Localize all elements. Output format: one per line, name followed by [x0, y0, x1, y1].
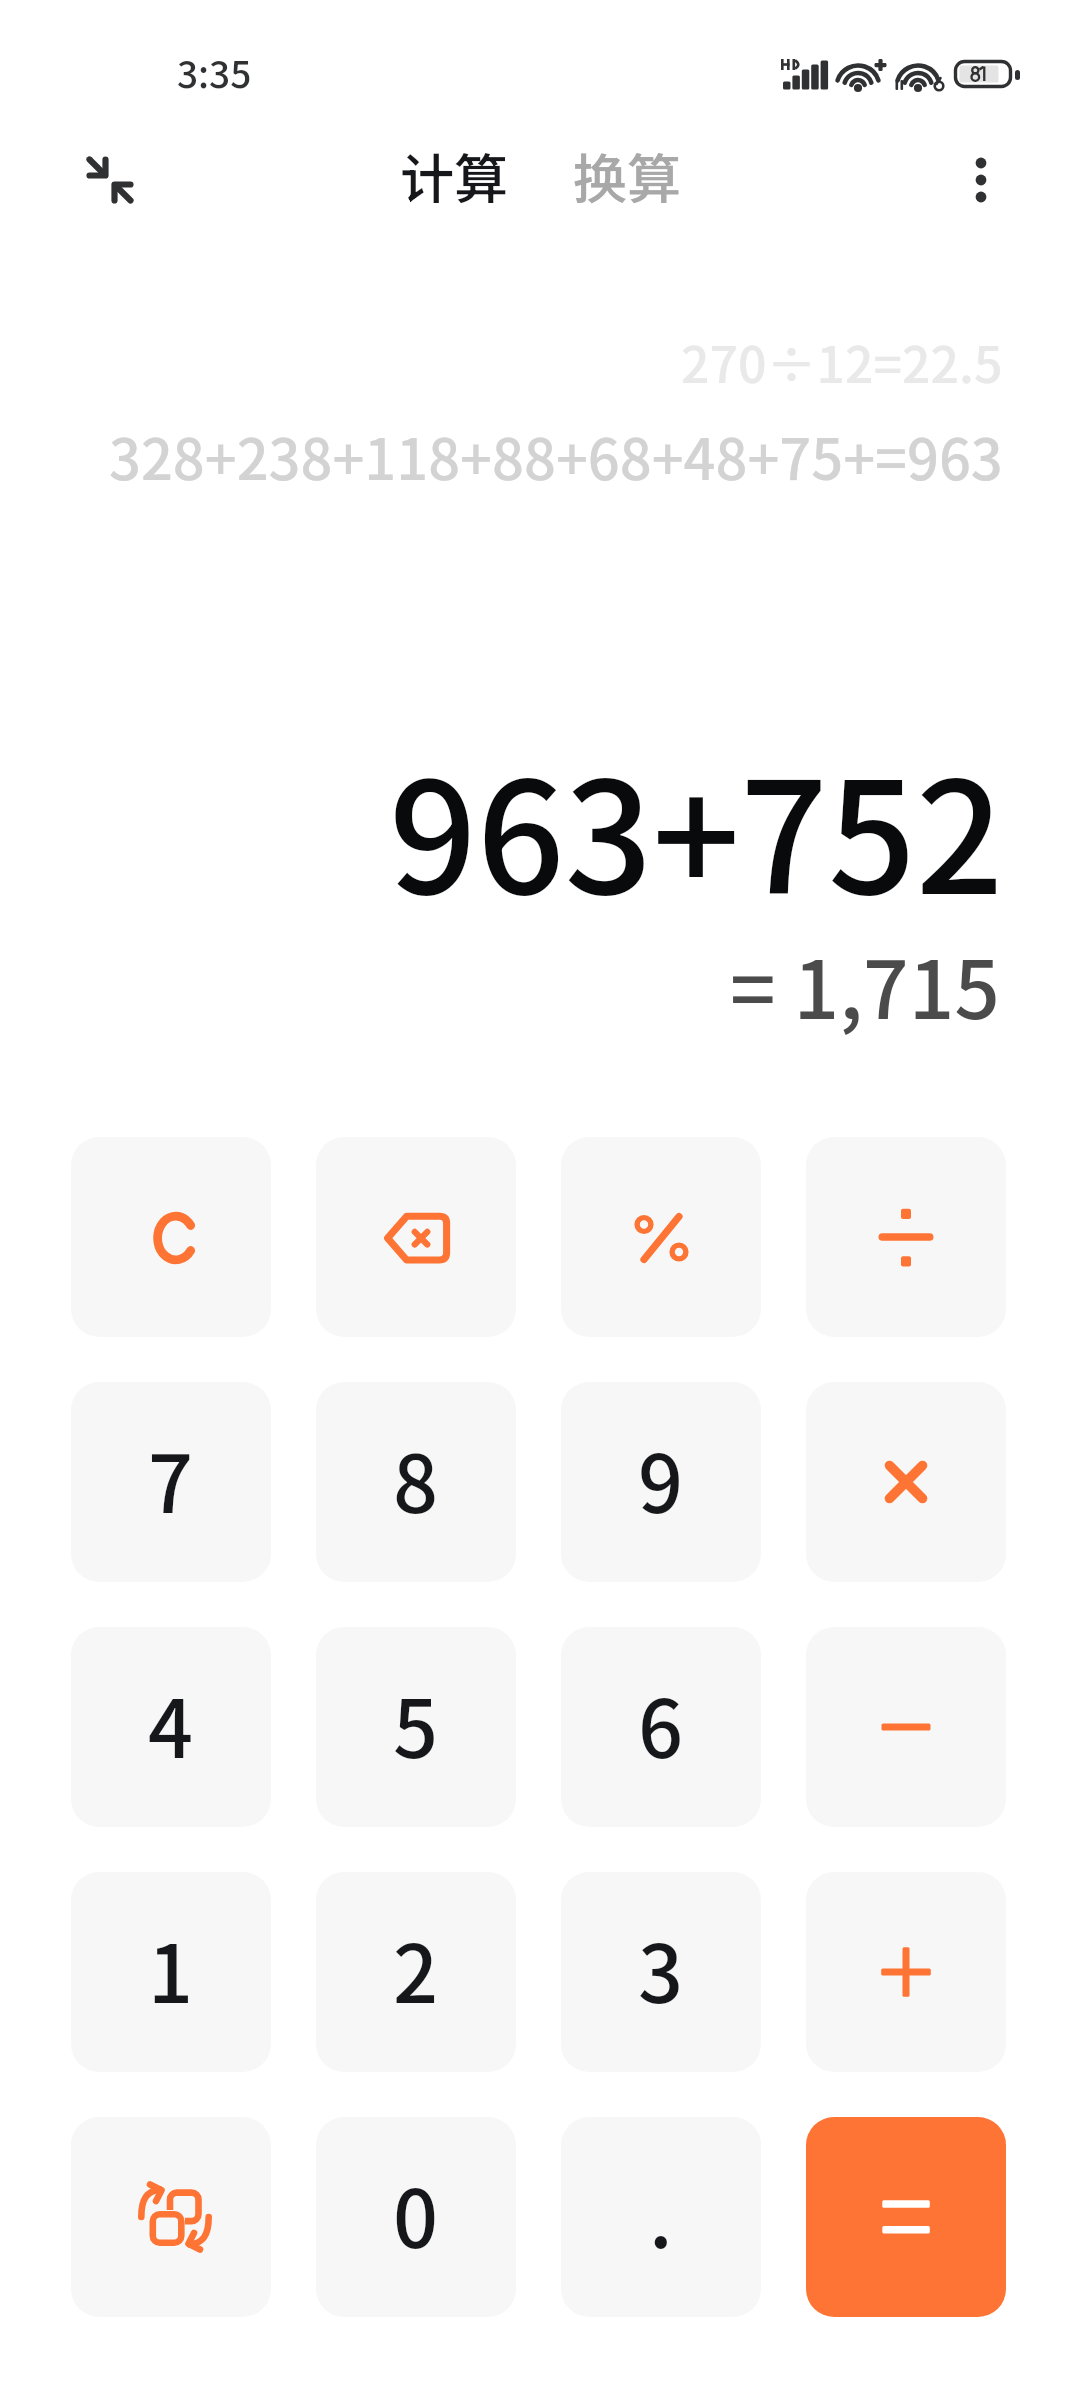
staticText: 1 — [148, 1911, 194, 2025]
button[interactable]: 换算 — [565, 136, 689, 212]
staticText: 9 — [638, 1421, 684, 1535]
button[interactable]: 6 — [561, 1627, 761, 1827]
button[interactable]: 4 — [71, 1627, 271, 1827]
staticText: = 1,715 — [730, 926, 1000, 1042]
button[interactable]: More options — [936, 135, 1026, 225]
staticText: 5 — [393, 1666, 439, 1780]
staticText: 963+752 — [389, 715, 1004, 938]
staticText: 0 — [393, 2156, 439, 2270]
button[interactable]: Percent — [561, 1137, 761, 1337]
staticText: 328+238+118+88+68+48+75+=963 — [109, 415, 1003, 496]
button[interactable]: Clear — [71, 1137, 271, 1337]
button[interactable]: 1 — [71, 1872, 271, 2072]
staticText: 8 — [393, 1421, 439, 1535]
button[interactable]: 2 — [316, 1872, 516, 2072]
staticText: 7 — [148, 1421, 194, 1535]
button[interactable]: Minus — [806, 1627, 1006, 1827]
button[interactable]: Multiply — [806, 1382, 1006, 1582]
staticText: 6 — [638, 1666, 684, 1780]
staticText: 换算 — [573, 136, 681, 212]
button[interactable]: 8 — [316, 1382, 516, 1582]
staticText: 3:35 — [177, 45, 252, 99]
button[interactable]: 7 — [71, 1382, 271, 1582]
button[interactable]: Equals — [806, 2117, 1006, 2317]
staticText: 4 — [148, 1666, 194, 1780]
button[interactable]: Backspace — [316, 1137, 516, 1337]
button[interactable]: 计算 — [392, 136, 516, 212]
button[interactable]: 3 — [561, 1872, 761, 2072]
staticText: . — [649, 2156, 673, 2270]
staticText: 270÷12=22.5 — [681, 325, 1003, 397]
button[interactable]: 0 — [316, 2117, 516, 2317]
button[interactable]: Collapse — [66, 136, 154, 224]
staticText: 2 — [393, 1911, 439, 2025]
button[interactable]: Unit converter — [71, 2117, 271, 2317]
button[interactable]: 5 — [316, 1627, 516, 1827]
staticText: 3 — [638, 1911, 684, 2025]
button[interactable]: . — [561, 2117, 761, 2317]
button[interactable]: Plus — [806, 1872, 1006, 2072]
button[interactable]: Divide — [806, 1137, 1006, 1337]
button[interactable]: 9 — [561, 1382, 761, 1582]
staticText: 计算 — [400, 136, 508, 212]
